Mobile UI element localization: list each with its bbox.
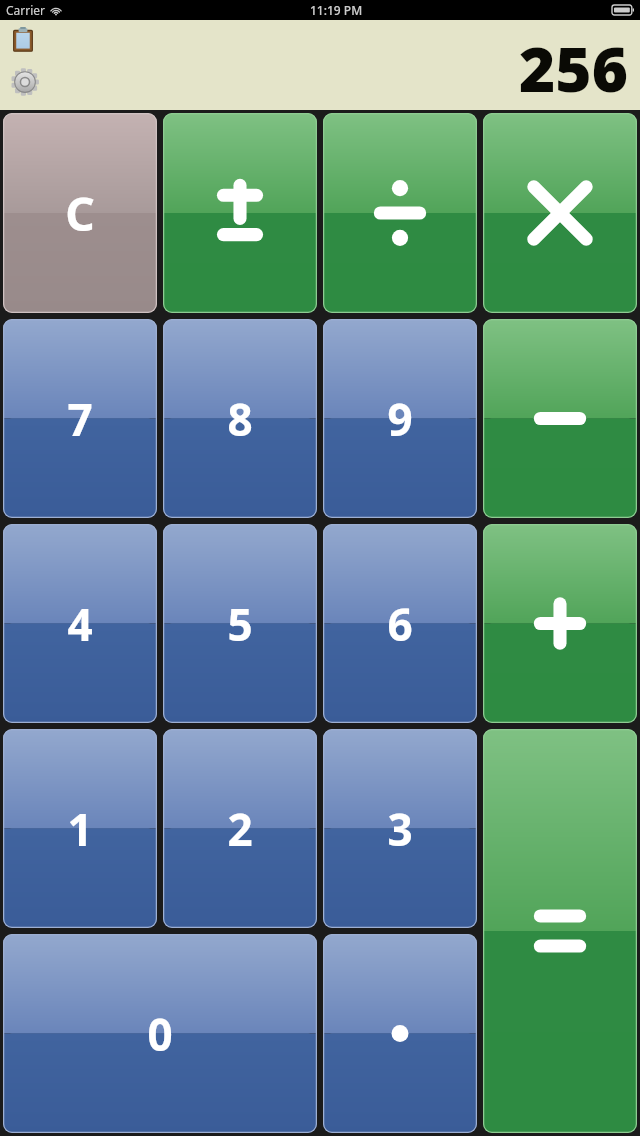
staticText: 3 <box>387 799 413 859</box>
button[interactable]: C <box>3 113 157 313</box>
button[interactable]: 6 <box>323 524 477 723</box>
staticText: 256 <box>519 26 628 110</box>
staticText: 11:19 PM <box>310 2 363 18</box>
button[interactable]: 2 <box>163 729 317 928</box>
button[interactable]: 5 <box>163 524 317 723</box>
button[interactable]: Plus minus <box>163 113 317 313</box>
staticText: 4 <box>67 594 93 654</box>
staticText: 9 <box>387 389 413 449</box>
button[interactable]: Equals <box>483 729 637 1133</box>
button[interactable]: Decimal point <box>323 934 477 1133</box>
button[interactable]: 8 <box>163 319 317 518</box>
button[interactable]: 3 <box>323 729 477 928</box>
button[interactable]: Divide <box>323 113 477 313</box>
staticText: 7 <box>67 389 93 449</box>
button[interactable]: Settings <box>8 65 42 99</box>
button[interactable]: Minus <box>483 319 637 518</box>
button[interactable]: 0 <box>3 934 317 1133</box>
button[interactable]: Plus <box>483 524 637 723</box>
button[interactable]: 4 <box>3 524 157 723</box>
button[interactable]: Multiply <box>483 113 637 313</box>
staticText: 1 <box>67 799 93 859</box>
staticText: 5 <box>227 594 253 654</box>
button[interactable]: 9 <box>323 319 477 518</box>
staticText: 8 <box>227 389 253 449</box>
staticText: 0 <box>147 1004 173 1064</box>
button[interactable]: 1 <box>3 729 157 928</box>
staticText: Carrier <box>6 2 46 18</box>
button[interactable]: 7 <box>3 319 157 518</box>
staticText: 2 <box>227 799 253 859</box>
staticText: 6 <box>387 594 413 654</box>
staticText: C <box>65 182 95 245</box>
button[interactable]: Paste from clipboard <box>8 25 38 55</box>
